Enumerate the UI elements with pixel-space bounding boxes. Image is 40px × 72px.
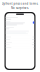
button[interactable]: Info [33, 21, 35, 24]
staticText: No surprises. [11, 6, 29, 10]
button[interactable] [3, 41, 37, 43]
button[interactable] [3, 44, 37, 46]
staticText: Upfront prices and terms. [1, 2, 38, 5]
button[interactable] [3, 46, 37, 49]
button[interactable] [3, 38, 37, 41]
button[interactable] [3, 13, 37, 16]
button[interactable] [3, 36, 37, 38]
